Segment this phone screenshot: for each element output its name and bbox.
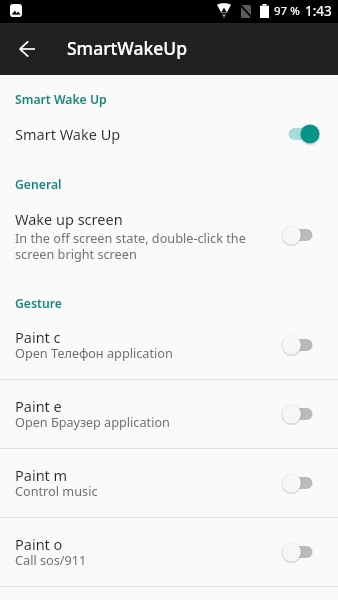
staticText: Open Телефон application — [15, 344, 173, 361]
staticText: Smart Wake Up — [15, 91, 107, 108]
button[interactable]: Smart Wake Up — [0, 112, 338, 157]
staticText: 1:43 — [305, 2, 332, 20]
staticText: Paint c — [15, 327, 61, 347]
staticText: Paint o — [15, 534, 63, 554]
button[interactable]: Paint o — [0, 519, 338, 588]
button[interactable]: Switch off — [282, 225, 320, 245]
staticText: Paint e — [15, 396, 62, 416]
staticText: 97 % — [274, 3, 300, 19]
button[interactable]: Paint c — [0, 312, 338, 381]
button[interactable]: Switch off — [282, 542, 320, 562]
staticText: Smart Wake Up — [15, 124, 121, 144]
button[interactable]: Switch off — [282, 473, 320, 493]
button[interactable]: Wake up screen — [0, 198, 338, 268]
staticText: Paint m — [15, 465, 68, 485]
button[interactable]: Switch on — [282, 124, 320, 144]
staticText: In the off screen state, double-click th… — [15, 229, 246, 262]
staticText: Control music — [15, 482, 98, 499]
button[interactable]: Paint m — [0, 450, 338, 519]
staticText: Call sos/911 — [15, 551, 87, 568]
staticText: SmartWakeUp — [67, 36, 188, 60]
staticText: Gesture — [15, 295, 62, 312]
staticText: Wake up screen — [15, 209, 123, 229]
button[interactable]: Switch off — [282, 404, 320, 424]
staticText: General — [15, 176, 62, 193]
button[interactable]: Paint e — [0, 381, 338, 450]
staticText: Open Браузер application — [15, 413, 170, 430]
button[interactable]: Switch off — [282, 335, 320, 355]
button[interactable]: Back — [0, 23, 54, 75]
